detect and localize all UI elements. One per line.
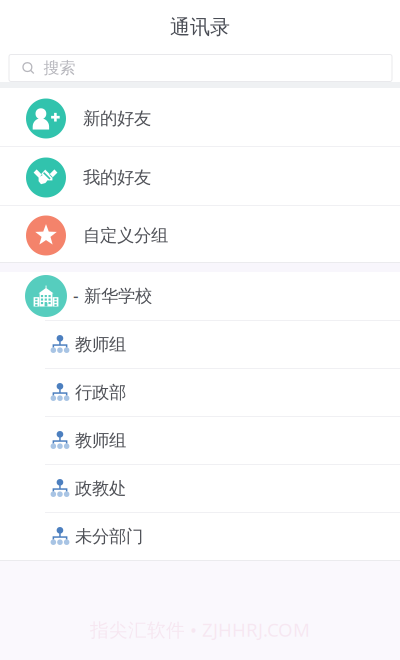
button[interactable]: 我的好友 [0, 147, 400, 205]
button[interactable]: 自定义分组 [0, 206, 400, 262]
staticText: 教师组 [75, 430, 126, 451]
button[interactable]: 未分部门 [0, 513, 400, 560]
staticText: 指尖汇软件 • ZJHHRJ.COM [90, 617, 310, 642]
button[interactable]: 新的好友 [0, 88, 400, 146]
button[interactable]: 教师组 [0, 417, 400, 464]
staticText: 教师组 [75, 334, 126, 355]
staticText: 新的好友 [83, 108, 151, 129]
staticText: 新华学校 [84, 285, 152, 307]
button[interactable]: 教师组 [0, 321, 400, 368]
button[interactable]: 政教处 [0, 465, 400, 512]
staticText: 行政部 [75, 382, 126, 403]
button[interactable]: - [0, 272, 400, 320]
button[interactable]: 行政部 [0, 369, 400, 416]
staticText: 自定义分组 [83, 225, 168, 246]
staticText: 搜索 [44, 58, 76, 78]
staticText: 通讯录 [170, 15, 230, 39]
staticText: - [73, 284, 79, 307]
staticText: 政教处 [75, 478, 126, 499]
staticText: 未分部门 [75, 526, 143, 547]
staticText: 我的好友 [83, 167, 151, 188]
